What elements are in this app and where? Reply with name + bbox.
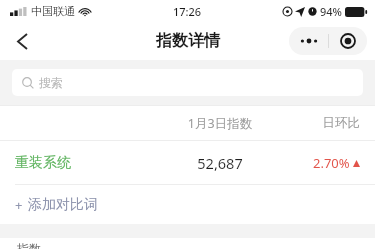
staticText: 指数 (17, 241, 41, 249)
staticText: 52,687 (160, 153, 280, 173)
staticText: 1月3日指数 (160, 115, 280, 132)
staticText: 2.70% (313, 154, 350, 172)
staticText: 搜索 (39, 75, 63, 90)
button[interactable]: 搜索 (12, 69, 363, 96)
staticText: 指数详情 (156, 31, 220, 51)
button[interactable]: + (0, 185, 375, 224)
staticText: 中国联通 (31, 4, 75, 18)
button[interactable]: Back (0, 22, 44, 60)
staticText: 重装系统 (15, 154, 160, 172)
staticText: 17:26 (173, 4, 202, 19)
staticText: 添加对比词 (28, 196, 98, 214)
button[interactable]: Target (329, 27, 367, 55)
staticText: 日环比 (280, 115, 360, 131)
staticText: + (15, 196, 23, 214)
button[interactable]: 重装系统 (0, 141, 375, 184)
button[interactable]: More options (289, 27, 328, 55)
staticText: 94% (320, 4, 342, 19)
